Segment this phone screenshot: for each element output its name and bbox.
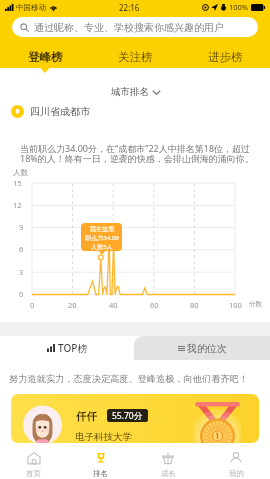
button[interactable]: 关注榜 [90, 45, 180, 69]
staticText: 60 [150, 300, 159, 310]
staticText: 100% [229, 2, 249, 12]
button[interactable]: Ranking [67, 444, 134, 479]
staticText: 中国移动 [16, 3, 46, 12]
staticText: 当前职么力34.00分，在“成都市”22人中排名第18位，超过 18%的人！终有… [20, 142, 254, 165]
staticText: 100 [229, 300, 242, 310]
staticText: 6 [19, 244, 24, 254]
staticText: 40 [109, 300, 118, 310]
button[interactable]: 我的位次 [134, 336, 270, 360]
staticText: 努力造就实力，态度决定高度。登峰造极，向他们看齐吧！ [9, 373, 248, 385]
button[interactable]: Growth [134, 444, 202, 479]
staticText: 我的位次 [187, 342, 227, 355]
button[interactable]: 城市排名 [0, 84, 270, 100]
staticText: 通过昵称、专业、学校搜索你感兴趣的用户 [34, 21, 224, 34]
staticText: 55.70分 [112, 410, 143, 422]
staticText: 首页 [26, 469, 41, 478]
staticText: 12 [13, 200, 22, 210]
staticText: 仟仟 [76, 410, 97, 423]
staticText: TOP榜 [58, 341, 88, 355]
staticText: 关注榜 [118, 50, 153, 64]
staticText: 22:16 [119, 2, 140, 13]
button[interactable]: 进步榜 [180, 45, 270, 69]
staticText: 人数 [13, 168, 28, 177]
staticText: 进步榜 [208, 50, 243, 64]
staticText: 城市排名 [111, 86, 149, 98]
staticText: 0 [19, 289, 24, 299]
staticText: 0 [30, 300, 35, 310]
button[interactable]: Profile [202, 444, 270, 479]
button[interactable]: Home [0, 444, 67, 479]
button[interactable]: 登峰榜 [0, 45, 90, 69]
staticText: 排名 [93, 469, 108, 478]
staticText: 80 [190, 300, 199, 310]
staticText: 9 [19, 222, 24, 232]
staticText: 我在这里 职么力34.00 人数5人 [85, 225, 119, 250]
staticText: 成长 [161, 469, 176, 478]
staticText: 电子科技大学 [75, 431, 132, 443]
staticText: 15 [13, 178, 22, 188]
button[interactable]: 通过昵称、专业、学校搜索你感兴趣的用户 [12, 17, 258, 37]
staticText: 20 [68, 300, 77, 310]
staticText: 分数 [249, 300, 262, 308]
staticText: 3 [19, 267, 24, 277]
button[interactable]: 仟仟 [11, 394, 259, 443]
staticText: 我的 [229, 469, 244, 478]
button[interactable]: TOP榜 [0, 336, 134, 360]
staticText: 登峰榜 [28, 50, 63, 64]
staticText: 四川省成都市 [30, 105, 90, 118]
